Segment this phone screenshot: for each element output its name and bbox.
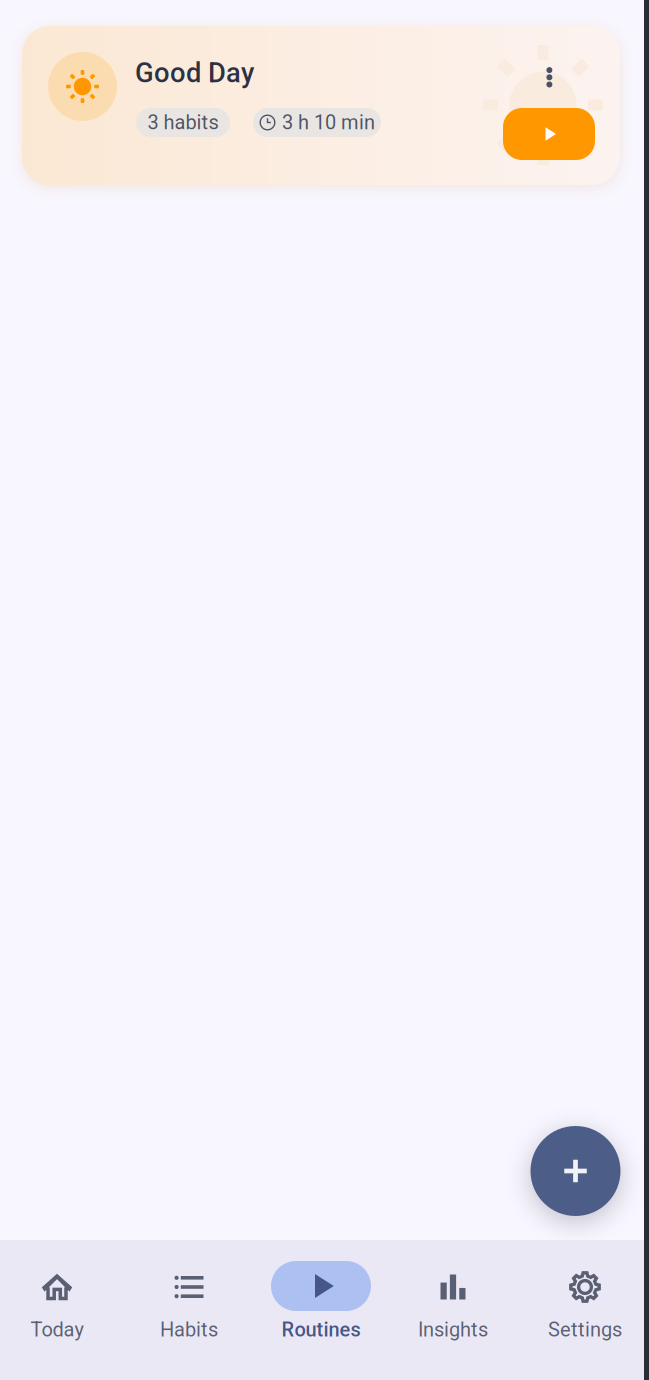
button[interactable]: More options: [535, 58, 563, 96]
button[interactable]: Today: [0, 1269, 123, 1341]
button[interactable]: Add routine: [530, 1126, 620, 1216]
button[interactable]: Insights: [387, 1269, 519, 1341]
staticText: Habits: [160, 1318, 218, 1341]
staticText: 3 h 10 min: [282, 111, 375, 134]
button[interactable]: Start routine: [503, 108, 595, 160]
staticText: Today: [30, 1318, 83, 1341]
staticText: Insights: [418, 1318, 488, 1341]
staticText: Routines: [281, 1318, 360, 1341]
button[interactable]: Habits: [123, 1269, 255, 1341]
staticText: 3 habits: [147, 111, 218, 134]
staticText: Good Day: [135, 57, 254, 89]
button[interactable]: Routines: [255, 1261, 387, 1341]
button[interactable]: Settings: [519, 1269, 649, 1341]
staticText: Settings: [548, 1318, 622, 1341]
